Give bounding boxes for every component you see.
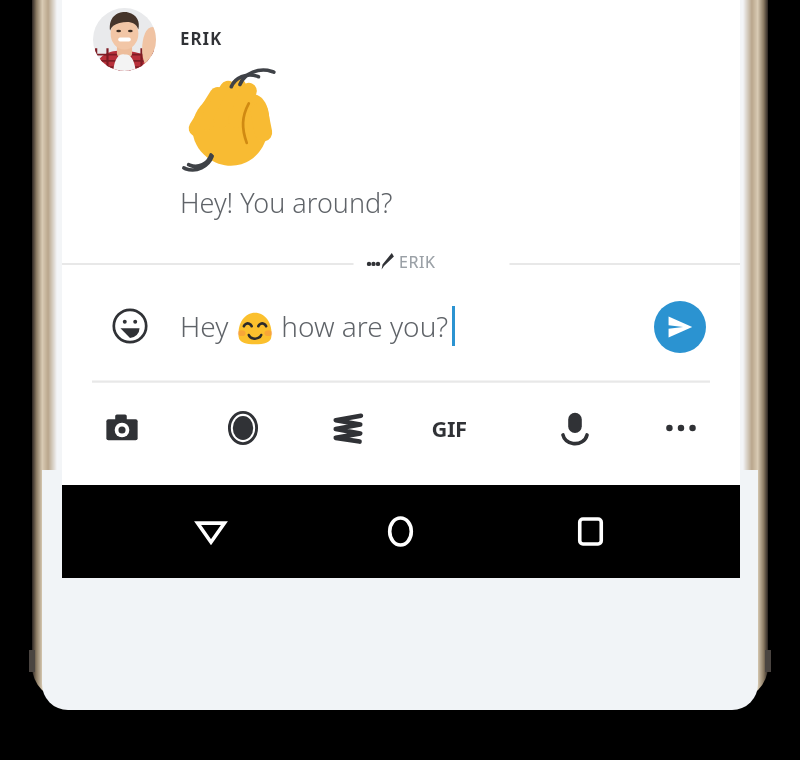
button[interactable]: Hey	[180, 278, 455, 374]
button[interactable]: Home	[370, 501, 430, 561]
staticText: ERIK	[180, 27, 223, 50]
button[interactable]: GIF	[421, 400, 477, 456]
staticText: Hey	[180, 307, 236, 345]
staticText: how are you?	[274, 307, 449, 345]
button[interactable]: Photos	[215, 400, 271, 456]
button[interactable]: Camera	[94, 400, 150, 456]
button[interactable]: Emoji keyboard	[100, 296, 160, 356]
staticText: GIF	[431, 413, 467, 443]
button[interactable]: Send	[654, 301, 706, 353]
staticText: ERIK	[399, 251, 436, 273]
button[interactable]: Back	[181, 501, 241, 561]
staticText: Hey! You around?	[180, 184, 393, 221]
button[interactable]: More options	[653, 400, 709, 456]
button[interactable]: Sticker	[320, 400, 376, 456]
button[interactable]: Recent apps	[560, 501, 620, 561]
button[interactable]: Erik avatar	[93, 8, 156, 71]
button[interactable]: Voice message	[547, 400, 603, 456]
